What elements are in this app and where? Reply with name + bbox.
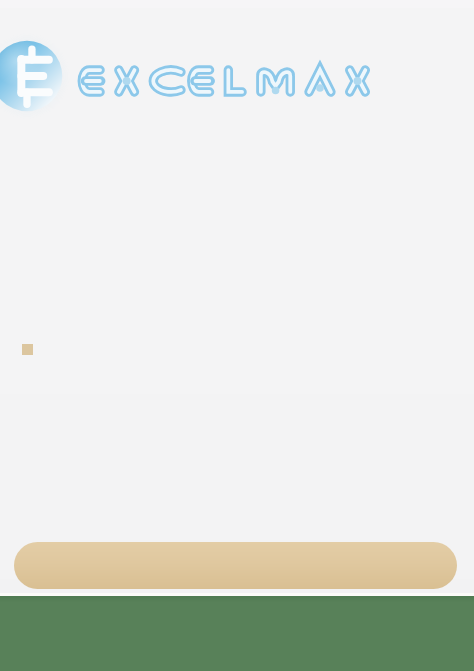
button[interactable]: Primary action (14, 542, 457, 589)
button[interactable]: Excelmax home (0, 0, 474, 124)
